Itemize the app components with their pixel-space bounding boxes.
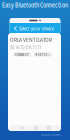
button[interactable]: CONNECT [13, 52, 31, 56]
staticText: www.example.com [41, 132, 63, 137]
button[interactable]: SETTINGS [34, 52, 51, 56]
staticText: Easy Bluetooth Connection [2, 0, 68, 10]
staticText: CONNECT [15, 52, 29, 57]
staticText: Select your device [19, 25, 54, 32]
staticText: SETTINGS [38, 52, 50, 57]
staticText: 00:1A:7D:DA:71:13 [10, 44, 41, 50]
staticText: ORLA VENTILATOR [10, 35, 52, 43]
